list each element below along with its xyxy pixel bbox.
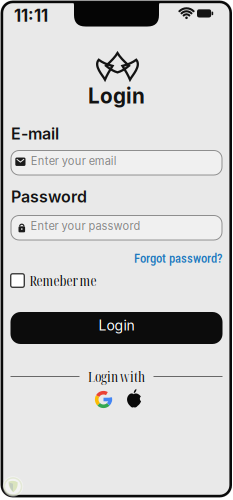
staticText: Login — [88, 83, 145, 108]
button[interactable]: Remeber me — [10, 271, 96, 290]
button[interactable]: Sign in with Google — [94, 390, 112, 408]
staticText: Enter your email — [31, 154, 117, 168]
staticText: Login with — [88, 367, 145, 386]
staticText: Remeber me — [29, 271, 96, 290]
button[interactable]: Enter your password — [10, 215, 222, 240]
button[interactable]: Forgot password? — [134, 251, 223, 266]
button[interactable]: Enter your email — [10, 150, 222, 175]
staticText: Login — [98, 317, 134, 334]
staticText: Forgot password? — [134, 251, 223, 266]
button[interactable]: Sign in with Apple — [126, 388, 142, 408]
staticText: Password — [11, 187, 87, 206]
staticText: Enter your password — [31, 219, 141, 233]
staticText: 11:11 — [14, 5, 48, 26]
button[interactable]: Login — [10, 312, 222, 344]
staticText: E-mail — [11, 124, 59, 143]
